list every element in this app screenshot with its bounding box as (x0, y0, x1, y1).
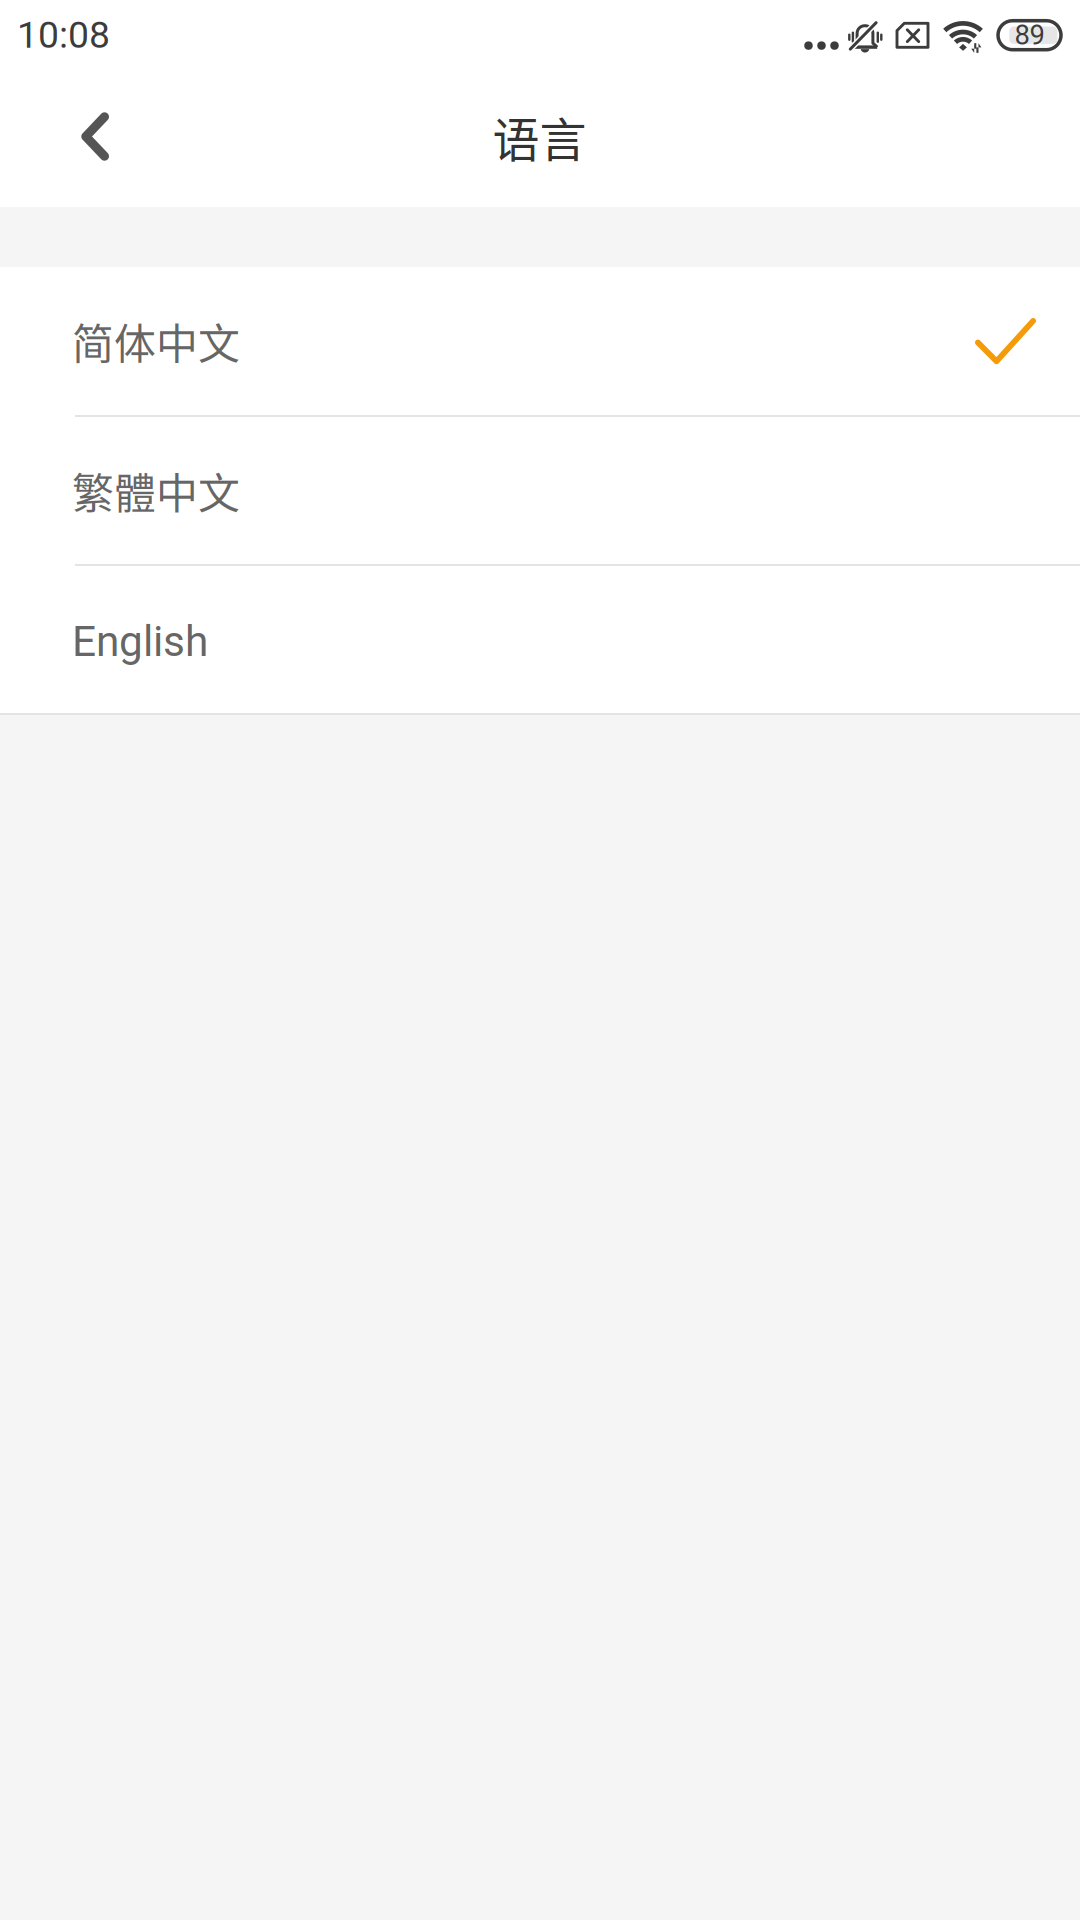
staticText: 89 (1014, 19, 1044, 51)
staticText: 繁體中文 (72, 460, 240, 521)
button[interactable]: Back (19, 68, 171, 205)
staticText: 10:08 (17, 13, 110, 57)
button[interactable]: English (0, 566, 1080, 715)
staticText: 语言 (492, 102, 586, 170)
button[interactable]: 繁體中文 (0, 417, 1080, 566)
staticText: English (72, 617, 208, 666)
staticText: 简体中文 (72, 311, 240, 371)
button[interactable]: 简体中文 (0, 267, 1080, 417)
